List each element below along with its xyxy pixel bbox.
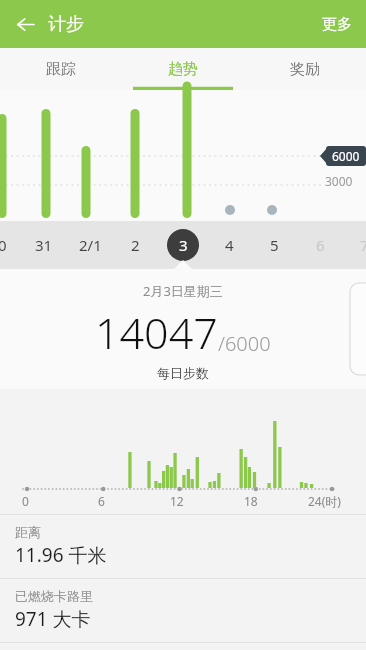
staticText: 3000 bbox=[325, 173, 353, 189]
staticText: 2月3日星期三 bbox=[143, 282, 223, 300]
staticText: 6 bbox=[316, 235, 325, 255]
staticText: 已燃烧卡路里 bbox=[15, 588, 93, 604]
staticText: 7 bbox=[360, 235, 366, 255]
staticText: 3 bbox=[179, 235, 188, 255]
staticText: 5 bbox=[270, 235, 279, 255]
staticText: 跟踪 bbox=[46, 60, 76, 79]
button[interactable]: 距离 bbox=[0, 515, 366, 578]
button[interactable]: 3 bbox=[162, 224, 204, 266]
staticText: 6000 bbox=[332, 148, 360, 164]
staticText: 奖励 bbox=[290, 60, 320, 79]
staticText: 4 bbox=[225, 235, 234, 255]
button[interactable]: 7 bbox=[343, 224, 366, 266]
staticText: 趋势 bbox=[168, 60, 198, 79]
staticText: 11.96 千米 bbox=[15, 542, 107, 568]
staticText: 计步 bbox=[48, 13, 84, 36]
staticText: 0 bbox=[22, 493, 29, 509]
staticText: 24(时) bbox=[308, 493, 341, 509]
button[interactable]: 6 bbox=[299, 224, 341, 266]
button[interactable]: 奖励 bbox=[244, 48, 366, 90]
staticText: 31 bbox=[35, 235, 53, 255]
button[interactable]: 4 bbox=[208, 224, 250, 266]
staticText: 0 bbox=[0, 235, 7, 255]
staticText: 2 bbox=[131, 235, 140, 255]
staticText: 更多 bbox=[322, 15, 352, 34]
button[interactable]: Back bbox=[4, 3, 46, 45]
button[interactable]: 趋势 bbox=[122, 48, 244, 90]
button[interactable]: 2 bbox=[114, 224, 156, 266]
button[interactable]: 更多 bbox=[316, 7, 358, 42]
staticText: 971 大卡 bbox=[15, 606, 91, 632]
button[interactable]: 0 bbox=[0, 224, 23, 266]
button[interactable]: 2/1 bbox=[69, 224, 111, 266]
button[interactable]: 跟踪 bbox=[0, 48, 122, 90]
staticText: 距离 bbox=[15, 524, 41, 540]
staticText: /6000 bbox=[218, 330, 271, 357]
button[interactable]: 已燃烧卡路里 bbox=[0, 579, 366, 642]
button[interactable]: 5 bbox=[253, 224, 295, 266]
staticText: 6 bbox=[98, 493, 105, 509]
staticText: 12 bbox=[170, 493, 184, 509]
staticText: 2/1 bbox=[79, 235, 102, 255]
staticText: 14047 bbox=[95, 303, 218, 362]
staticText: 18 bbox=[244, 493, 258, 509]
button[interactable]: 31 bbox=[23, 224, 65, 266]
staticText: 每日步数 bbox=[157, 365, 209, 381]
